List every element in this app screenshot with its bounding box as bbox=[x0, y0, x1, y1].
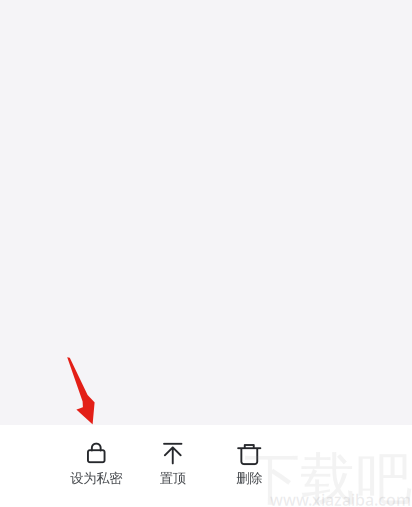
staticText: 设为私密 bbox=[70, 470, 122, 486]
staticText: www.xiazaiba.com bbox=[270, 489, 411, 507]
staticText: 删除 bbox=[236, 470, 262, 486]
staticText: 下载吧 bbox=[244, 445, 412, 507]
button[interactable]: 删除 bbox=[211, 442, 287, 491]
button[interactable]: 设为私密 bbox=[58, 442, 134, 491]
button[interactable]: 置顶 bbox=[134, 442, 211, 491]
staticText: 置顶 bbox=[160, 470, 186, 486]
